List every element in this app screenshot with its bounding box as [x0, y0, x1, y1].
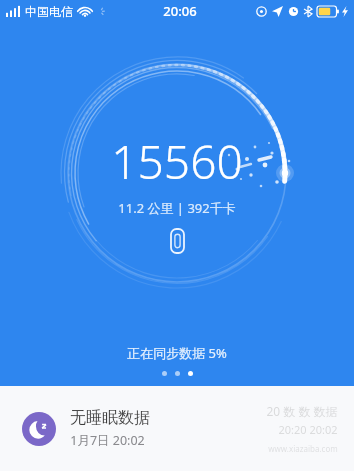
staticText: 正在同步数据 5%	[127, 344, 227, 362]
staticText: 20 数 数 数据	[266, 403, 338, 419]
button[interactable]: 无睡眠数据	[0, 386, 354, 471]
staticText: 15560	[111, 130, 243, 193]
staticText: 20:20 20:02	[278, 422, 338, 437]
staticText: 11.2 公里 | 392千卡	[118, 199, 236, 217]
staticText: 中国电信	[25, 4, 73, 19]
staticText: 1月7日 20:02	[70, 432, 145, 449]
staticText: 20:06	[163, 2, 197, 20]
staticText: www.xiazaiba.com	[268, 443, 338, 454]
staticText: 无睡眠数据	[70, 408, 150, 428]
other: Band connected	[171, 229, 184, 253]
